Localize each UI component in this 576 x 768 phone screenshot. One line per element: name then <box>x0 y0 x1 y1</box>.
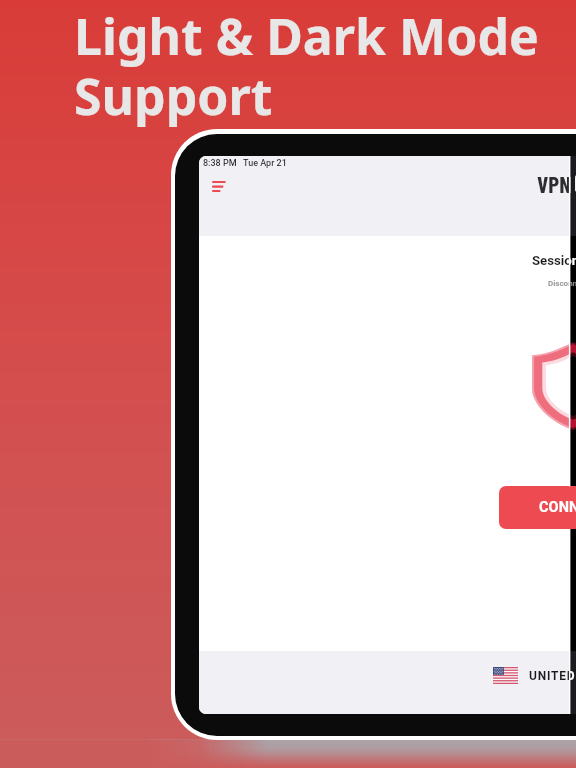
staticText: Session Time <box>570 253 576 268</box>
button[interactable]: CONNECT <box>570 486 576 529</box>
staticText: Light & Dark Mode Support <box>74 2 539 130</box>
staticText: UNITED STATES <box>570 669 576 683</box>
staticText: Disconnected <box>570 279 576 288</box>
staticText: VPN <box>570 170 572 198</box>
staticText: VPN <box>537 170 572 198</box>
staticText: CONNECT <box>570 499 576 516</box>
button[interactable]: VPN <box>570 170 576 198</box>
button[interactable]: VPN <box>537 170 576 198</box>
staticText: Disconnected <box>548 279 576 288</box>
staticText: CONNECT <box>539 499 576 516</box>
button[interactable]: Menu <box>206 175 230 199</box>
button[interactable]: UNITED STATES <box>570 667 576 684</box>
button[interactable]: CONNECT <box>499 486 576 529</box>
staticText: 8:38 PM Tue Apr 21 <box>203 158 287 169</box>
button[interactable]: UNITED STATES <box>493 667 576 684</box>
staticText: UNITED STATES <box>529 669 576 683</box>
staticText: Session Time <box>532 253 576 268</box>
